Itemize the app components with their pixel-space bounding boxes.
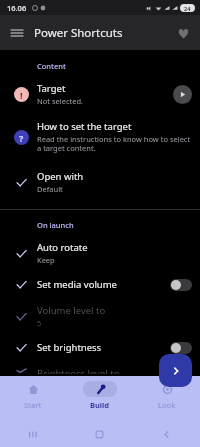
staticText: Keep bbox=[37, 255, 55, 265]
staticText: 5 bbox=[37, 318, 42, 328]
button[interactable]: Menu bbox=[4, 20, 30, 46]
staticText: Brightness level to bbox=[37, 367, 120, 374]
staticText: Power Shortcuts bbox=[34, 25, 123, 41]
button[interactable]: Open with bbox=[0, 168, 200, 196]
button[interactable]: Recents bbox=[0, 421, 66, 447]
button[interactable]: Look bbox=[133, 376, 200, 421]
button[interactable]: Start bbox=[0, 376, 66, 421]
staticText: Set brightness bbox=[37, 341, 102, 354]
button[interactable]: Auto rotate bbox=[0, 239, 200, 267]
staticText: Target bbox=[37, 82, 66, 95]
button[interactable]: Favorite bbox=[171, 21, 195, 45]
staticText: Content bbox=[37, 61, 66, 71]
staticText: Open with bbox=[37, 170, 84, 183]
button[interactable]: Toggle bbox=[170, 342, 192, 354]
staticText: Set media volume bbox=[37, 278, 117, 291]
staticText: 16.06 bbox=[7, 3, 27, 13]
staticText: ? bbox=[19, 132, 24, 144]
staticText: Not selected. bbox=[37, 96, 84, 106]
button[interactable]: ? bbox=[0, 118, 200, 156]
staticText: Build bbox=[90, 400, 110, 410]
staticText: Default bbox=[37, 184, 63, 194]
staticText: Start bbox=[24, 400, 42, 410]
staticText: 24 bbox=[184, 5, 191, 12]
button[interactable]: ! bbox=[0, 80, 200, 108]
button[interactable]: Next bbox=[159, 354, 192, 387]
button[interactable]: Run bbox=[173, 85, 192, 104]
staticText: Read the instructions to know how to sel… bbox=[37, 134, 192, 154]
staticText: ! bbox=[20, 89, 23, 101]
staticText: Volume level to bbox=[37, 304, 106, 317]
button[interactable]: Set brightness bbox=[0, 339, 200, 356]
button[interactable]: Brightness level to bbox=[0, 365, 200, 376]
staticText: On launch bbox=[37, 220, 74, 230]
button[interactable]: Volume level to bbox=[0, 302, 200, 330]
staticText: Auto rotate bbox=[37, 241, 88, 254]
button[interactable]: Build bbox=[66, 376, 133, 421]
staticText: How to set the target bbox=[37, 120, 132, 133]
button[interactable]: Home bbox=[66, 421, 133, 447]
button[interactable]: Toggle bbox=[170, 279, 192, 291]
button[interactable]: Set media volume bbox=[0, 276, 200, 293]
staticText: Look bbox=[158, 400, 176, 410]
